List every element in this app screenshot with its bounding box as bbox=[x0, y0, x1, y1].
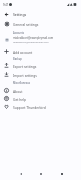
button[interactable]: Support Thunderbird bbox=[0, 102, 81, 111]
staticText: Backup bbox=[13, 57, 22, 60]
button[interactable]: Add account bbox=[0, 47, 81, 56]
staticText: Import settings bbox=[13, 73, 37, 77]
button[interactable]: Import settings bbox=[0, 70, 81, 79]
staticText: Accounts bbox=[13, 31, 24, 34]
button[interactable]: Back bbox=[0, 10, 13, 19]
staticText: 9:41 bbox=[3, 3, 9, 7]
staticText: About bbox=[13, 89, 23, 93]
button[interactable]: Get help bbox=[0, 94, 81, 103]
staticText: Miscellaneous bbox=[13, 81, 30, 84]
button[interactable]: Back bbox=[14, 168, 27, 180]
button[interactable]: General settings bbox=[0, 19, 81, 28]
button[interactable]: Recent apps bbox=[55, 168, 68, 180]
staticText: Settings bbox=[13, 12, 27, 17]
staticText: mialexbbcnt@exampleymail.com bbox=[13, 36, 54, 40]
button[interactable]: About bbox=[0, 86, 81, 95]
staticText: Add account bbox=[13, 50, 33, 54]
staticText: Support Thunderbird bbox=[13, 105, 46, 109]
button[interactable]: Home bbox=[34, 168, 47, 180]
button[interactable]: Export settings bbox=[0, 61, 81, 70]
staticText: General settings bbox=[13, 22, 39, 26]
staticText: Get help bbox=[13, 97, 27, 101]
staticText: mialexbbcnt@exampleymail.com bbox=[13, 41, 49, 44]
staticText: Export settings bbox=[13, 64, 37, 68]
button[interactable]: mialexbbcnt@exampleymail.com bbox=[0, 35, 81, 45]
